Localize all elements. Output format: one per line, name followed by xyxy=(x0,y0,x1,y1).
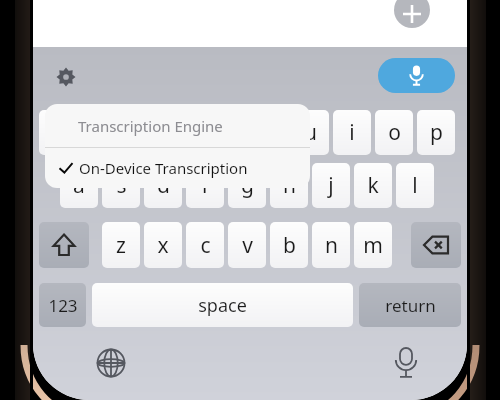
button[interactable]: p xyxy=(417,110,455,155)
button[interactable]: Voice input xyxy=(388,345,424,381)
staticText: j xyxy=(328,171,334,200)
button[interactable]: o xyxy=(375,110,413,155)
button[interactable]: m xyxy=(354,222,392,268)
staticText: s xyxy=(116,171,127,200)
staticText: w xyxy=(92,118,109,147)
button[interactable]: Settings xyxy=(51,62,81,92)
button[interactable] xyxy=(411,222,461,268)
button[interactable]: z xyxy=(102,222,140,268)
button[interactable]: v xyxy=(228,222,266,268)
staticText: m xyxy=(363,231,383,260)
button[interactable]: w xyxy=(81,110,119,155)
button[interactable]: Dictate xyxy=(378,58,455,93)
staticText: x xyxy=(157,231,169,260)
button[interactable]: l xyxy=(396,163,434,208)
staticText: g xyxy=(241,171,254,200)
staticText: space xyxy=(198,293,247,318)
button[interactable]: c xyxy=(186,222,224,268)
button[interactable]: e xyxy=(123,110,161,155)
button[interactable]: h xyxy=(270,163,308,208)
staticText: b xyxy=(283,231,296,260)
staticText: z xyxy=(116,231,126,260)
staticText: u xyxy=(304,118,317,147)
staticText: k xyxy=(367,171,379,200)
button[interactable] xyxy=(39,222,89,268)
button[interactable]: k xyxy=(354,163,392,208)
button[interactable]: r xyxy=(165,110,203,155)
staticText: o xyxy=(388,118,401,147)
button[interactable]: return xyxy=(359,283,461,327)
button[interactable]: u xyxy=(291,110,329,155)
staticText: v xyxy=(242,231,253,260)
staticText: f xyxy=(201,171,209,200)
staticText: a xyxy=(73,171,85,200)
staticText: r xyxy=(180,118,189,147)
button[interactable]: n xyxy=(312,222,350,268)
staticText: l xyxy=(412,171,418,200)
button[interactable]: g xyxy=(228,163,266,208)
button[interactable]: j xyxy=(312,163,350,208)
staticText: n xyxy=(325,231,338,260)
staticText: Transcription Engine xyxy=(78,116,223,136)
button[interactable]: Transcription Engine xyxy=(45,104,310,147)
button[interactable]: y xyxy=(249,110,287,155)
button[interactable]: d xyxy=(144,163,182,208)
staticText: e xyxy=(136,118,148,147)
button[interactable]: s xyxy=(102,163,140,208)
button[interactable]: On-Device Transcription xyxy=(45,148,310,188)
staticText: 123 xyxy=(48,294,78,317)
staticText: h xyxy=(283,171,296,200)
button[interactable]: Change keyboard language xyxy=(93,345,129,381)
button[interactable]: b xyxy=(270,222,308,268)
staticText: i xyxy=(349,118,355,147)
staticText: On-Device Transcription xyxy=(79,158,248,178)
staticText: d xyxy=(157,171,170,200)
button[interactable]: t xyxy=(207,110,245,155)
button[interactable]: x xyxy=(144,222,182,268)
staticText: return xyxy=(385,294,436,317)
button[interactable]: i xyxy=(333,110,371,155)
button[interactable]: q xyxy=(39,110,77,155)
staticText: p xyxy=(430,118,443,147)
button[interactable]: Add attachment xyxy=(394,0,430,28)
button[interactable]: space xyxy=(92,283,353,327)
button[interactable]: a xyxy=(60,163,98,208)
button[interactable]: 123 xyxy=(39,283,86,327)
button[interactable]: f xyxy=(186,163,224,208)
staticText: c xyxy=(200,231,211,260)
